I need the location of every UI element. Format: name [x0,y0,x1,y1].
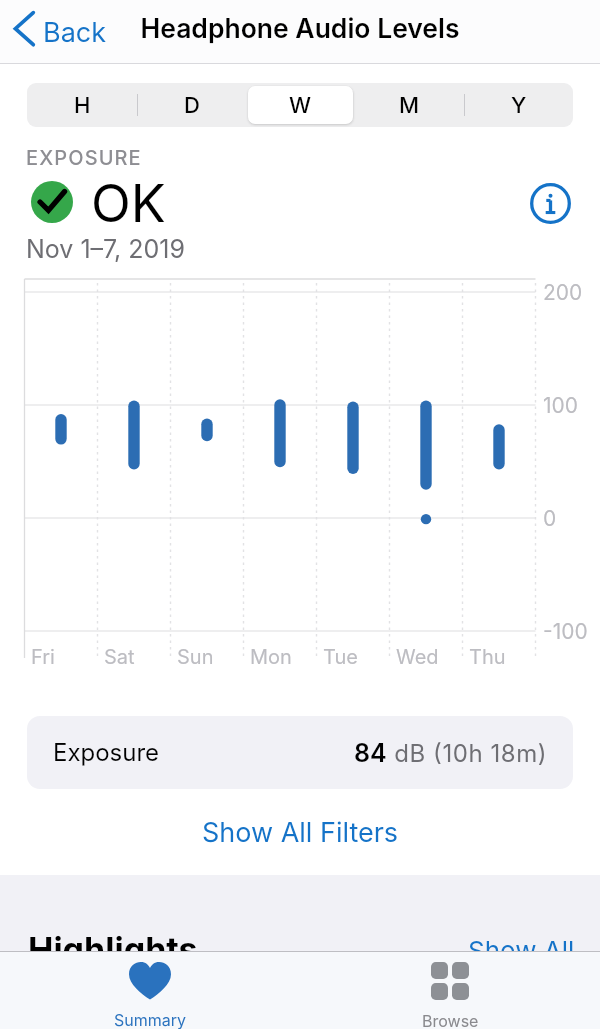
button[interactable]: Y [464,83,573,127]
staticText: Browse [422,1011,479,1029]
button[interactable]: M [355,83,464,127]
staticText: Headphone Audio Levels [0,12,600,44]
staticText: Back [43,16,107,49]
button[interactable]: Back [6,4,112,60]
staticText: Y [511,92,527,119]
staticText: Show All Filters [202,816,399,849]
staticText: Fri [31,645,55,669]
staticText: H [74,92,91,119]
staticText: OK [91,172,166,235]
staticText: 100 [543,393,579,418]
staticText: M [399,92,420,119]
button[interactable]: H [27,83,137,127]
button[interactable]: More info [524,177,576,229]
staticText: Exposure [53,738,160,767]
staticText: 200 [543,280,583,305]
button[interactable]: W [246,83,355,127]
button[interactable]: Summary [0,951,300,1029]
staticText: EXPOSURE [26,146,142,170]
staticText: dB (10h 18m) [387,739,548,768]
button[interactable]: Exposure [27,716,573,789]
staticText: Summary [114,1010,187,1029]
staticText: W [289,92,312,119]
staticText: Mon [250,645,292,669]
staticText: 84 [354,738,387,768]
staticText: Highlights [28,929,198,970]
button[interactable]: D [137,83,246,127]
staticText: Wed [396,645,439,669]
staticText: -100 [543,619,588,644]
staticText: D [184,92,200,119]
staticText: Thu [469,645,506,669]
staticText: Sat [104,645,135,669]
staticText: Nov 1–7, 2019 [26,234,186,264]
button[interactable]: Browse [300,951,600,1029]
staticText: 0 [543,506,557,531]
button[interactable]: Show All [468,935,575,966]
staticText: Tue [323,645,358,669]
staticText: Sun [177,645,214,669]
button[interactable]: Show All Filters [0,806,600,858]
